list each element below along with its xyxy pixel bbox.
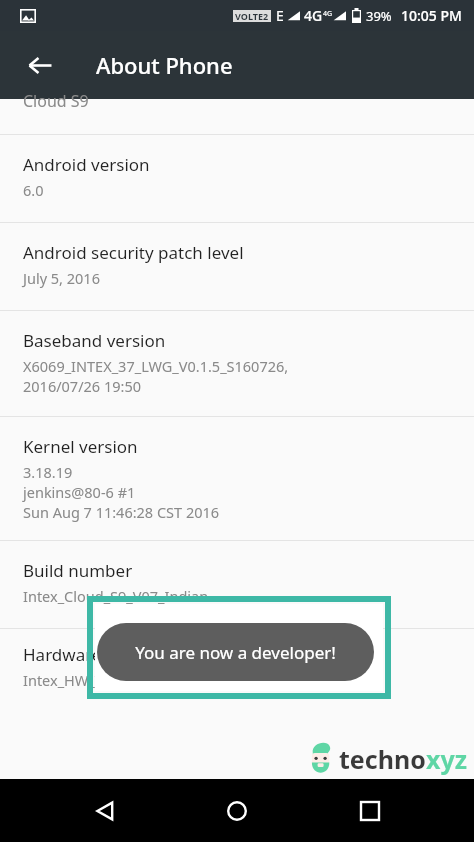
button[interactable]: Back [16,41,64,89]
staticText: 4G [304,6,323,25]
staticText: Hardware Version [23,643,166,666]
staticText: Build number [23,559,133,582]
button[interactable]: Baseband version [0,311,474,416]
button[interactable]: Back [77,783,133,839]
button[interactable]: Home [209,783,265,839]
button[interactable]: Android version [0,135,474,222]
button[interactable]: Recent apps [342,783,398,839]
staticText: Intex_HW_V1.0.0 [23,670,137,690]
staticText: VOLTE2 [235,10,269,22]
staticText: X6069_INTEX_37_LWG_V0.1.5_S160726, [23,356,289,376]
staticText: E [276,6,284,25]
staticText: Intex_Cloud_S9_V07_Indian [23,586,209,606]
staticText: Android security patch level [23,241,244,264]
staticText: Android version [23,153,150,176]
staticText: Cloud S9 [23,90,89,112]
button[interactable]: Kernel version [0,417,474,540]
staticText: jenkins@80-6 #1 [23,482,136,502]
staticText: July 5, 2016 [23,268,100,288]
staticText: 6.0 [23,180,44,200]
staticText: Sun Aug 7 11:46:28 CST 2016 [23,502,220,522]
staticText: 10:05 PM [401,6,462,25]
staticText: You are now a developer! [135,641,336,664]
staticText: xyz [426,742,468,776]
staticText: techno [339,742,426,776]
staticText: Baseband version [23,329,166,352]
button[interactable]: Hardware Version [0,629,474,704]
staticText: 3.18.19 [23,462,73,482]
button[interactable]: Cloud S9 [0,99,474,134]
staticText: Kernel version [23,435,138,458]
button[interactable]: Android security patch level [0,223,474,310]
staticText: 2016/07/26 19:50 [23,376,141,396]
staticText: 4G [323,9,333,19]
staticText: 39% [366,7,392,25]
button[interactable]: Build number [0,541,474,628]
staticText: About Phone [96,50,233,80]
